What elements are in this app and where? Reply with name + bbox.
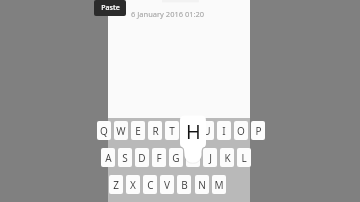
button[interactable]: Paste xyxy=(94,0,126,16)
staticText: K xyxy=(224,151,231,165)
staticText: L xyxy=(241,151,247,165)
button[interactable]: R xyxy=(148,121,162,140)
button[interactable]: J xyxy=(203,148,217,167)
staticText: S xyxy=(122,151,128,165)
button[interactable]: B xyxy=(177,175,191,194)
button[interactable]: H xyxy=(186,148,200,167)
staticText: A xyxy=(105,151,112,165)
staticText: G xyxy=(172,151,180,165)
button[interactable]: T xyxy=(165,121,179,140)
staticText: W xyxy=(116,124,126,138)
staticText: H xyxy=(189,151,197,165)
button[interactable]: P xyxy=(251,121,265,140)
staticText: R xyxy=(152,124,159,138)
staticText: C xyxy=(147,178,154,192)
staticText: Paste xyxy=(101,3,120,13)
button[interactable]: K xyxy=(220,148,234,167)
button[interactable]: G xyxy=(169,148,183,167)
staticText: F xyxy=(156,151,162,165)
staticText: V xyxy=(164,178,170,192)
staticText: P xyxy=(255,124,262,138)
button[interactable]: E xyxy=(131,121,145,140)
staticText: T xyxy=(169,124,175,138)
button[interactable]: V xyxy=(160,175,174,194)
staticText: D xyxy=(138,151,146,165)
staticText: O xyxy=(237,124,245,138)
staticText: Z xyxy=(113,178,119,192)
staticText: I xyxy=(222,124,226,138)
staticText: E xyxy=(135,124,141,138)
other: H key pressed xyxy=(180,117,206,167)
button[interactable]: Y xyxy=(183,121,197,140)
button[interactable]: M xyxy=(212,175,226,194)
staticText: U xyxy=(203,124,211,138)
button[interactable]: W xyxy=(114,121,128,140)
staticText: J xyxy=(209,151,212,165)
button[interactable]: O xyxy=(234,121,248,140)
staticText: 6 January 2016 01:20 xyxy=(131,9,205,19)
staticText: B xyxy=(181,178,188,192)
button[interactable]: U xyxy=(200,121,214,140)
button[interactable]: A xyxy=(101,148,115,167)
staticText: N xyxy=(198,178,206,192)
staticText: M xyxy=(214,178,224,192)
button[interactable]: X xyxy=(126,175,140,194)
staticText: Q xyxy=(100,124,108,138)
button[interactable]: Z xyxy=(109,175,123,194)
button[interactable]: Q xyxy=(97,121,111,140)
button[interactable]: L xyxy=(237,148,251,167)
staticText: X xyxy=(130,178,136,192)
button[interactable]: C xyxy=(143,175,157,194)
button[interactable]: S xyxy=(118,148,132,167)
button[interactable]: F xyxy=(152,148,166,167)
staticText: Y xyxy=(187,124,193,138)
button[interactable]: N xyxy=(195,175,209,194)
staticText: H xyxy=(186,118,201,145)
button[interactable]: D xyxy=(135,148,149,167)
button[interactable]: I xyxy=(217,121,231,140)
